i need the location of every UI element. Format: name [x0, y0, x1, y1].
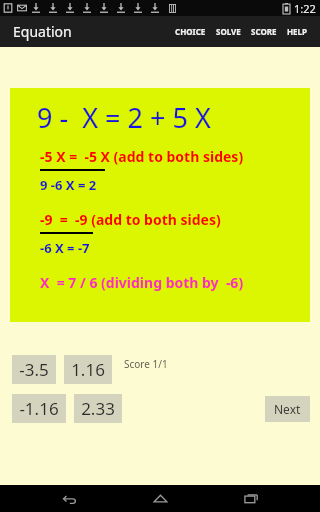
- button[interactable]: Next: [265, 396, 310, 422]
- staticText: -9 = -9 (add to both sides): [40, 210, 221, 229]
- staticText: -5 X = -5 X (add to both sides): [40, 147, 244, 166]
- staticText: HELP: [287, 26, 308, 37]
- button[interactable]: Recent apps: [229, 485, 273, 512]
- staticText: SCORE: [251, 26, 277, 37]
- staticText: CHOICE: [175, 26, 206, 37]
- button[interactable]: SCORE: [247, 22, 281, 41]
- button[interactable]: CHOICE: [171, 22, 210, 41]
- staticText: 1:22: [294, 1, 316, 16]
- button[interactable]: 1.16: [64, 355, 112, 384]
- staticText: X = 7 / 6 (dividing both by -6): [40, 273, 244, 292]
- staticText: Score 1/1: [124, 357, 168, 371]
- staticText: SOLVE: [216, 26, 241, 37]
- staticText: 1.16: [71, 358, 105, 381]
- button[interactable]: 2.33: [74, 394, 122, 423]
- staticText: -6 X = -7: [40, 239, 90, 257]
- staticText: -1.16: [19, 397, 59, 420]
- staticText: Equation: [13, 22, 72, 41]
- button[interactable]: -3.5: [12, 355, 56, 384]
- button[interactable]: Home: [138, 485, 182, 512]
- button[interactable]: Back: [47, 485, 91, 512]
- staticText: -3.5: [19, 358, 49, 381]
- staticText: 9 -6 X = 2: [40, 176, 97, 194]
- staticText: Next: [274, 401, 301, 417]
- staticText: 9 - X = 2 + 5 X: [37, 99, 310, 136]
- staticText: 2.33: [81, 397, 115, 420]
- button[interactable]: HELP: [283, 22, 312, 41]
- button[interactable]: SOLVE: [212, 22, 245, 41]
- button[interactable]: -1.16: [12, 394, 66, 423]
